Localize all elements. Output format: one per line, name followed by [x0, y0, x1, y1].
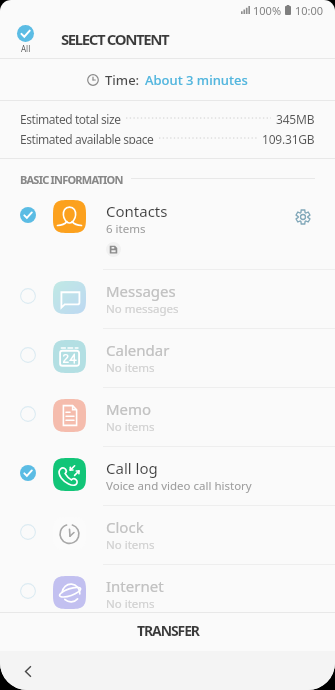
staticText: No items — [106, 360, 155, 376]
button[interactable]: Call log — [0, 447, 335, 505]
staticText: 10:00 — [295, 3, 324, 18]
staticText: Calendar — [106, 340, 170, 360]
button[interactable]: Memo — [0, 388, 335, 446]
staticText: No items — [106, 419, 155, 435]
button[interactable]: Back — [14, 657, 42, 685]
staticText: 109.31GB — [262, 131, 315, 144]
staticText: All — [21, 43, 31, 54]
staticText: 100% — [253, 3, 282, 18]
staticText: No items — [106, 596, 155, 612]
staticText: Voice and video call history — [106, 478, 252, 494]
button[interactable]: Settings — [285, 199, 321, 235]
staticText: 345MB — [276, 111, 315, 124]
staticText: Memo — [106, 399, 152, 419]
staticText: About 3 minutes — [145, 71, 248, 89]
button[interactable]: TRANSFER — [0, 612, 335, 651]
staticText: BASIC INFORMATION — [20, 172, 123, 185]
staticText: Call log — [106, 458, 158, 478]
button[interactable]: Internet — [0, 565, 335, 623]
staticText: Time: — [105, 71, 140, 89]
button[interactable]: Calendar — [0, 329, 335, 387]
staticText: 6 items — [106, 221, 146, 237]
staticText: Estimated total size — [20, 111, 121, 124]
button[interactable]: Contacts — [0, 190, 335, 269]
staticText: No messages — [106, 301, 179, 317]
staticText: TRANSFER — [137, 621, 199, 640]
staticText: SELECT CONTENT — [61, 29, 169, 49]
staticText: Estimated available space — [20, 131, 154, 144]
staticText: Clock — [106, 517, 144, 537]
button[interactable]: All — [14, 25, 37, 54]
staticText: Internet — [106, 576, 164, 596]
staticText: No items — [106, 537, 155, 553]
staticText: Messages — [106, 281, 176, 301]
button[interactable]: Messages — [0, 270, 335, 328]
staticText: Contacts — [106, 201, 168, 221]
button[interactable]: Clock — [0, 506, 335, 564]
